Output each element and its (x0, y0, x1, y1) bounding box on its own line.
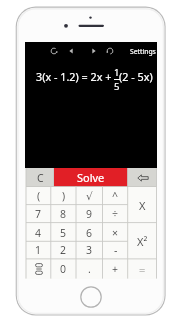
button[interactable]: - (103, 241, 128, 259)
staticText: 1 (35, 243, 42, 257)
staticText: Solve (77, 170, 105, 185)
staticText: ^ (112, 189, 119, 203)
button[interactable]: Forward (87, 44, 101, 58)
button[interactable]: Settings (130, 47, 157, 57)
button[interactable]: 8 (51, 205, 76, 223)
staticText: 5 (60, 226, 67, 240)
button[interactable]: X² (128, 223, 157, 259)
button[interactable]: C (26, 168, 54, 187)
button[interactable]: 9 (76, 205, 103, 223)
staticText: 1 (114, 66, 120, 79)
staticText: 2 (60, 243, 67, 257)
button[interactable]: √ (76, 187, 103, 205)
button[interactable]: 3 (76, 241, 103, 259)
staticText: 3 (86, 243, 93, 257)
staticText: √ (86, 190, 93, 202)
button[interactable]: Fraction (26, 259, 51, 279)
button[interactable]: X (128, 187, 157, 223)
button[interactable]: 0 (51, 259, 76, 279)
button[interactable]: Undo (103, 44, 117, 58)
staticText: . (88, 262, 91, 276)
button[interactable]: = (128, 259, 157, 279)
staticText: ( (37, 189, 41, 203)
staticText: X² (137, 234, 148, 249)
button[interactable]: Home (80, 286, 102, 308)
button[interactable]: 7 (26, 205, 51, 223)
button[interactable]: Back (64, 44, 78, 58)
button[interactable]: 5 (51, 223, 76, 242)
staticText: 8 (60, 207, 67, 221)
button[interactable]: 2 (51, 241, 76, 259)
button[interactable]: ( (26, 187, 51, 205)
staticText: + (112, 262, 119, 276)
button[interactable]: + (103, 259, 128, 279)
other: Fraction (32, 262, 46, 276)
button[interactable]: Refresh (47, 44, 61, 58)
staticText: 4 (35, 226, 42, 240)
button[interactable]: 4 (26, 223, 51, 242)
staticText: Settings (130, 47, 156, 56)
staticText: = (139, 262, 146, 277)
button[interactable]: ^ (103, 187, 128, 205)
staticText: C (37, 171, 44, 185)
staticText: 7 (35, 207, 42, 221)
staticText: × (112, 226, 119, 240)
staticText: 9 (86, 207, 93, 221)
staticText: - (114, 243, 118, 257)
button[interactable]: × (103, 223, 128, 242)
other: Backspace (136, 171, 150, 185)
button[interactable]: . (76, 259, 103, 279)
button[interactable]: ) (51, 187, 76, 205)
staticText: ) (62, 189, 66, 203)
staticText: 3(x - 1.2) = 2x + (36, 69, 112, 84)
button[interactable]: 6 (76, 223, 103, 242)
staticText: 6 (86, 226, 93, 240)
staticText: X (139, 198, 146, 213)
staticText: 5 (114, 80, 120, 93)
button[interactable]: Backspace (128, 168, 157, 187)
button[interactable]: ÷ (103, 205, 128, 223)
button[interactable]: 1 (26, 241, 51, 259)
staticText: 0 (60, 262, 67, 276)
staticText: (2 - 5x) (119, 69, 153, 84)
staticText: ÷ (112, 207, 119, 221)
button[interactable]: Solve (54, 168, 128, 187)
